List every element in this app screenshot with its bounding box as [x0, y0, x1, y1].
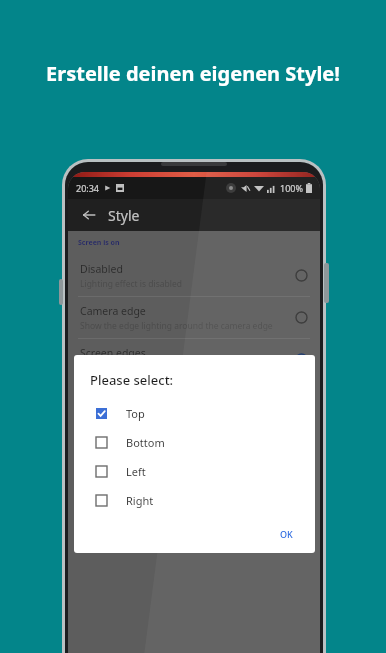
- staticText: 20:34: [76, 182, 100, 194]
- staticText: Style: [108, 206, 140, 225]
- staticText: Show a "LED" dot in the statusbar: [80, 404, 214, 416]
- staticText: Disabled: [80, 262, 123, 276]
- staticText: 100%: [280, 182, 303, 194]
- staticText: Fingerprint sensor: [80, 429, 172, 443]
- button[interactable]: Bottom: [90, 428, 301, 457]
- staticText: Right: [126, 493, 154, 508]
- staticText: Lighting effect is disabled: [80, 278, 183, 290]
- button[interactable]: OK: [272, 523, 301, 545]
- staticText: OK: [280, 528, 293, 540]
- staticText: Show the edge lighting around the camera…: [80, 320, 273, 332]
- staticText: Screen edges: [80, 346, 146, 360]
- button[interactable]: Fingerprint sensor: [68, 423, 320, 475]
- staticText: Show a lighting effect around the finger…: [80, 445, 288, 457]
- staticText: Screen is on: [78, 238, 120, 248]
- button[interactable]: Disabled: [68, 255, 320, 296]
- button[interactable]: Right: [90, 486, 301, 515]
- staticText: Please select:: [90, 371, 174, 389]
- button[interactable]: Screen edges: [68, 339, 320, 380]
- staticText: Top: [126, 406, 145, 421]
- button[interactable]: Back: [76, 202, 102, 228]
- staticText: Camera edge: [80, 304, 146, 318]
- button[interactable]: LED dot: [68, 381, 320, 422]
- staticText: Erstelle deinen eigenen Style!: [0, 60, 386, 87]
- button[interactable]: Top: [90, 399, 301, 428]
- button[interactable]: Left: [90, 457, 301, 486]
- staticText: Left: [126, 464, 146, 479]
- staticText: when the phone is locked (S10, Note10): [80, 457, 238, 469]
- button[interactable]: Camera edge: [68, 297, 320, 338]
- staticText: Bottom: [126, 435, 165, 450]
